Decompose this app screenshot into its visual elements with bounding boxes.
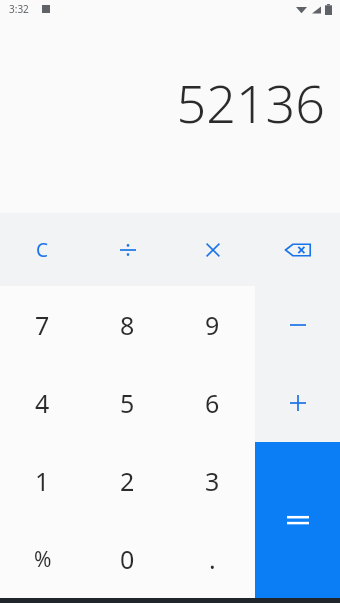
staticText: . [209,542,216,576]
staticText: 7 [35,308,50,342]
button[interactable]: 7 [0,286,85,364]
staticText: 52136 [176,67,325,138]
button[interactable]: 2 [85,442,170,520]
button[interactable]: % [0,520,85,598]
button[interactable]: 6 [170,364,255,442]
staticText: % [34,545,52,574]
button[interactable]: Divide [85,213,170,286]
button[interactable]: . [170,520,255,598]
button[interactable]: Plus [255,364,340,442]
button[interactable]: 1 [0,442,85,520]
staticText: 0 [120,542,135,576]
staticText: 4 [35,386,50,420]
button[interactable]: 8 [85,286,170,364]
button[interactable]: 3 [170,442,255,520]
staticText: 8 [120,308,135,342]
button[interactable]: Clear [0,213,85,286]
staticText: 5 [120,386,135,420]
staticText: 6 [205,386,220,420]
button[interactable]: Minus [255,286,340,364]
button[interactable]: Equals [255,442,340,598]
button[interactable]: 9 [170,286,255,364]
staticText: 3 [205,464,220,498]
staticText: C [36,237,49,263]
staticText: 3:32 [9,2,29,16]
button[interactable]: 4 [0,364,85,442]
staticText: 2 [120,464,135,498]
staticText: 9 [205,308,220,342]
button[interactable]: Backspace [255,213,340,286]
button[interactable]: Multiply [170,213,255,286]
staticText: 1 [35,464,50,498]
button[interactable]: 5 [85,364,170,442]
button[interactable]: 0 [85,520,170,598]
